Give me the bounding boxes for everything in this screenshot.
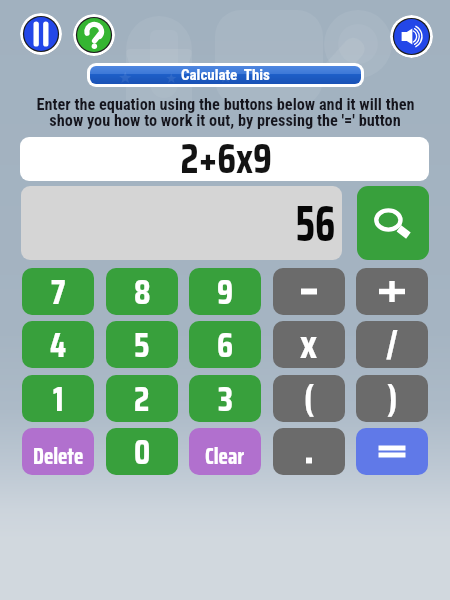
button[interactable]: minus [273, 268, 345, 315]
staticText: 56 [296, 184, 336, 263]
staticText: 4 [50, 318, 66, 372]
staticText: Enter the equation using the buttons bel… [36, 95, 415, 114]
button[interactable] [189, 375, 261, 422]
button[interactable] [20, 137, 429, 181]
staticText: ) [387, 370, 398, 427]
button[interactable] [189, 428, 261, 475]
button[interactable] [22, 375, 94, 422]
button[interactable] [106, 321, 178, 368]
button[interactable] [189, 321, 261, 368]
button[interactable] [273, 321, 345, 368]
staticText: 7 [51, 265, 66, 319]
button[interactable] [106, 375, 178, 422]
button[interactable]: Pause [20, 13, 62, 55]
staticText: Clear [205, 439, 245, 474]
staticText: 9 [217, 265, 234, 319]
staticText: 2+6x9 [180, 125, 273, 191]
button[interactable] [21, 186, 342, 260]
button[interactable]: Sound [390, 15, 433, 58]
staticText: 6 [217, 318, 234, 372]
staticText: / [386, 316, 398, 373]
button[interactable] [22, 321, 94, 368]
staticText: Calculate This [181, 66, 270, 84]
button[interactable] [106, 428, 178, 475]
button[interactable]: plus [356, 268, 428, 315]
button[interactable] [22, 268, 94, 315]
button[interactable] [273, 375, 345, 422]
button[interactable]: Search [357, 186, 429, 260]
staticText: show you how to work it out, by pressing… [49, 111, 401, 130]
staticText: x [300, 313, 318, 376]
button[interactable] [90, 66, 361, 84]
button[interactable]: equals [356, 428, 428, 475]
button[interactable] [356, 375, 428, 422]
staticText: ( [304, 370, 315, 427]
button[interactable]: Help [73, 14, 115, 56]
button[interactable] [356, 321, 428, 368]
staticText: 1 [53, 372, 64, 426]
staticText: 5 [134, 318, 150, 372]
button[interactable] [106, 268, 178, 315]
staticText: 2 [134, 372, 150, 426]
staticText: 8 [134, 265, 151, 319]
staticText: 3 [218, 372, 233, 426]
button[interactable] [22, 428, 94, 475]
staticText: 0 [134, 425, 151, 479]
button[interactable]: decimal point [273, 428, 345, 475]
staticText: Delete [33, 439, 84, 474]
button[interactable] [189, 268, 261, 315]
